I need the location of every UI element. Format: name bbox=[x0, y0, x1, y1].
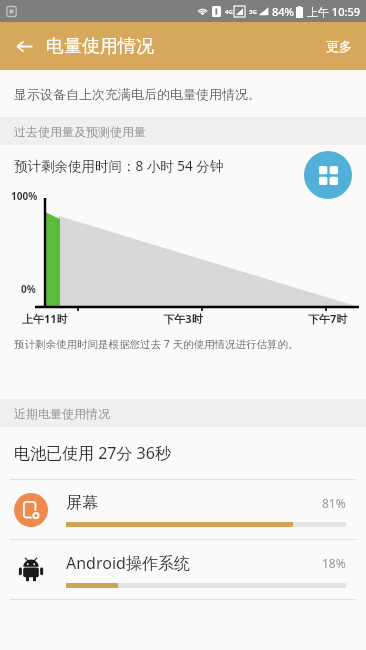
staticText: 预计剩余使用时间：8 小时 54 分钟 bbox=[14, 157, 224, 175]
staticText: 更多 bbox=[326, 38, 352, 54]
button[interactable]: 返回 bbox=[6, 28, 42, 64]
staticText: 0% bbox=[21, 282, 36, 296]
staticText: 81% bbox=[322, 495, 346, 511]
button[interactable]: 应用列表 bbox=[304, 151, 352, 199]
staticText: 下午3时 bbox=[163, 311, 203, 326]
staticText: 上午11时 bbox=[22, 311, 68, 326]
staticText: 电池已使用 27分 36秒 bbox=[14, 442, 171, 464]
staticText: 过去使用量及预测使用量 bbox=[14, 124, 146, 139]
staticText: 近期电量使用情况 bbox=[14, 406, 110, 421]
staticText: 18% bbox=[322, 555, 346, 571]
staticText: 100% bbox=[11, 189, 38, 203]
staticText: 84% bbox=[272, 4, 294, 19]
staticText: 预计剩余使用时间是根据您过去 7 天的使用情况进行估算的。 bbox=[14, 337, 299, 351]
staticText: 电量使用情况 bbox=[46, 35, 154, 58]
staticText: 显示设备自上次充满电后的电量使用情况。 bbox=[14, 86, 261, 102]
button[interactable]: Android操作系统 bbox=[0, 540, 366, 600]
button[interactable]: 更多 bbox=[318, 32, 360, 60]
staticText: 上午 10:59 bbox=[307, 4, 361, 19]
staticText: 3G bbox=[249, 8, 257, 16]
staticText: 屏幕 bbox=[66, 493, 322, 513]
staticText: 4G bbox=[225, 8, 233, 16]
staticText: 下午7时 bbox=[308, 311, 348, 326]
button[interactable]: 电池已使用 27分 36秒 bbox=[0, 427, 366, 479]
button[interactable]: 屏幕 bbox=[0, 480, 366, 540]
staticText: Android操作系统 bbox=[66, 552, 322, 574]
